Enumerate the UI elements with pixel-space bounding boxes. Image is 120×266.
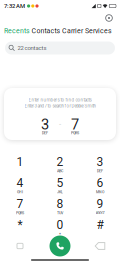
staticText: WXYZ bbox=[95, 211, 104, 215]
staticText: # bbox=[96, 218, 103, 232]
staticText: 7 bbox=[16, 197, 23, 211]
button[interactable]: 7 bbox=[1, 196, 39, 217]
staticText: 3 bbox=[41, 116, 49, 133]
button[interactable]: 6 bbox=[81, 175, 119, 196]
staticText: 5 bbox=[56, 176, 63, 190]
staticText: JKL bbox=[57, 190, 63, 194]
staticText: 6 bbox=[96, 176, 103, 190]
staticText: 9 bbox=[96, 197, 103, 211]
button[interactable]: Contacts bbox=[30, 25, 62, 37]
staticText: - bbox=[59, 119, 61, 129]
staticText: ABC bbox=[57, 169, 63, 173]
staticText: DEF bbox=[42, 131, 48, 135]
staticText: Enter 3 and 7 to search for Debbie Smith bbox=[24, 103, 95, 109]
staticText: + bbox=[59, 232, 61, 236]
staticText: Recents bbox=[4, 27, 30, 35]
staticText: Contacts bbox=[31, 27, 60, 35]
staticText: PQRS bbox=[16, 211, 24, 215]
staticText: 1 bbox=[16, 155, 23, 169]
button[interactable]: 8 bbox=[41, 196, 79, 217]
staticText: DEF bbox=[97, 169, 103, 173]
staticText: 7:32 AM bbox=[4, 3, 25, 9]
staticText: 8 bbox=[56, 197, 63, 211]
button[interactable]: Backspace bbox=[89, 235, 111, 257]
staticText: Carrier Services bbox=[62, 27, 112, 35]
staticText: MNO bbox=[96, 190, 104, 194]
staticText: PQRS bbox=[71, 131, 79, 135]
button[interactable]: 2 bbox=[41, 154, 79, 175]
button[interactable]: 0 bbox=[41, 217, 79, 238]
button[interactable]: 3 bbox=[81, 154, 119, 175]
staticText: GHI bbox=[17, 190, 23, 194]
staticText: 22 contacts bbox=[18, 45, 47, 51]
staticText: TUV bbox=[57, 211, 63, 215]
staticText: * bbox=[17, 218, 22, 232]
button[interactable]: Call bbox=[47, 233, 73, 259]
button[interactable]: * bbox=[1, 217, 39, 238]
button[interactable]: Settings bbox=[102, 11, 116, 25]
staticText: 4 bbox=[16, 176, 23, 190]
button[interactable]: 4 bbox=[1, 175, 39, 196]
button[interactable]: # bbox=[81, 217, 119, 238]
button[interactable]: 1 bbox=[1, 154, 39, 175]
button[interactable]: 22 contacts bbox=[5, 41, 115, 54]
button[interactable]: 9 bbox=[81, 196, 119, 217]
staticText: 7 bbox=[71, 116, 79, 133]
button[interactable]: 5 bbox=[41, 175, 79, 196]
staticText: 0 bbox=[56, 218, 63, 232]
staticText: Enter numbers to find contacts bbox=[28, 97, 91, 103]
button[interactable]: Carrier Services bbox=[59, 25, 115, 37]
staticText: 3 bbox=[96, 155, 103, 169]
staticText: 2 bbox=[56, 155, 63, 169]
button[interactable]: Recents bbox=[1, 25, 33, 37]
button[interactable]: SIM card bbox=[9, 235, 31, 257]
